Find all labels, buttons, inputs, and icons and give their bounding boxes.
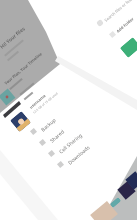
staticText: Hi! Your files: [0, 25, 27, 50]
staticText: Backup: [40, 116, 58, 133]
button[interactable]: [30, 128, 37, 135]
button[interactable]: [57, 161, 64, 168]
staticText: Cell Sharing: [58, 131, 84, 155]
staticText: 12.5 GB of 15 GB used: [32, 91, 59, 115]
button[interactable]: [10, 111, 31, 132]
staticText: Downloads: [67, 144, 92, 166]
button[interactable]: [120, 37, 137, 58]
button[interactable]: [39, 139, 46, 146]
staticText: Shared: [49, 128, 66, 144]
staticText: Add Folder: [115, 16, 135, 34]
staticText: username: [28, 93, 47, 110]
staticText: Your Plan, Your Timeline: [3, 51, 43, 86]
staticText: Search files or folders: [103, 0, 137, 23]
button[interactable]: Search: [96, 19, 104, 27]
button[interactable]: [48, 150, 55, 157]
